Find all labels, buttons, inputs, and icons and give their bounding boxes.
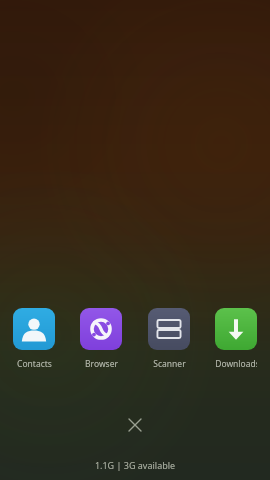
staticText: Downloads (215, 358, 257, 370)
button[interactable]: Contacts (13, 308, 55, 370)
staticText: Contacts (17, 358, 52, 370)
staticText: Scanner (153, 358, 186, 370)
button[interactable]: Downloads (215, 308, 257, 370)
staticText: Browser (85, 358, 118, 370)
button[interactable]: Browser (80, 308, 122, 370)
staticText: 1.1G | 3G available (0, 459, 270, 471)
button[interactable]: Close (119, 409, 151, 441)
button[interactable]: Scanner (148, 308, 190, 370)
